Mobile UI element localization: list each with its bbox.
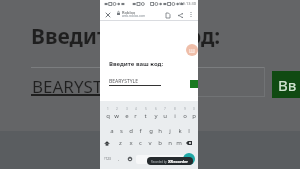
staticText: Roblox: [122, 10, 136, 15]
button[interactable]: ?123: [101, 154, 114, 164]
button[interactable]: n: [165, 138, 174, 148]
button[interactable]: y: [151, 111, 160, 121]
staticText: 4: [135, 107, 137, 111]
staticText: q: [106, 112, 110, 120]
staticText: 3: [126, 107, 128, 111]
button[interactable]: Вв: [272, 71, 300, 98]
button[interactable]: v: [145, 138, 154, 148]
staticText: 7: [164, 107, 166, 111]
button[interactable]: Space: [136, 155, 186, 164]
staticText: 9: [184, 107, 186, 111]
staticText: 6: [155, 107, 157, 111]
staticText: m: [176, 139, 182, 147]
staticText: u: [163, 112, 167, 120]
button[interactable]: p: [189, 111, 198, 121]
staticText: BEARYSTYLE: [109, 78, 138, 85]
button[interactable]: Emoji: [126, 154, 134, 164]
staticText: XRecorder: [168, 159, 189, 164]
button[interactable]: w: [112, 111, 121, 121]
staticText: b: [158, 139, 162, 147]
button[interactable]: Enter: [183, 153, 195, 165]
staticText: d: [129, 127, 133, 135]
staticText: x: [129, 139, 133, 147]
staticText: z: [119, 139, 122, 147]
staticText: Вв: [278, 75, 297, 95]
button[interactable]: Share: [175, 10, 185, 20]
button[interactable]: e: [122, 111, 131, 121]
button[interactable]: i: [170, 111, 179, 121]
button[interactable]: t: [141, 111, 150, 121]
staticText: ?123: [104, 157, 111, 161]
button[interactable]: Save page: [163, 10, 173, 20]
staticText: i: [174, 112, 176, 120]
staticText: 13:30: [186, 1, 196, 6]
staticText: k: [178, 127, 182, 135]
staticText: r: [134, 112, 137, 120]
staticText: Введите ваш код:: [31, 22, 221, 51]
staticText: 0: [193, 107, 195, 111]
staticText: n: [168, 139, 172, 147]
button[interactable]: o: [180, 111, 189, 121]
button[interactable]: z: [116, 138, 125, 148]
staticText: t: [144, 112, 147, 120]
staticText: 61%: [179, 2, 186, 6]
staticText: ш: [189, 46, 195, 55]
staticText: j: [169, 127, 171, 135]
button[interactable]: Backspace: [183, 138, 194, 148]
button[interactable]: c: [136, 138, 145, 148]
staticText: s: [120, 127, 123, 135]
button[interactable]: q: [103, 111, 112, 121]
button[interactable]: ,: [115, 154, 123, 164]
staticText: w: [114, 112, 119, 120]
staticText: e: [125, 112, 129, 120]
staticText: 1: [107, 107, 109, 111]
button[interactable]: d: [126, 126, 135, 136]
staticText: y: [154, 112, 158, 120]
button[interactable]: r: [131, 111, 140, 121]
staticText: v: [148, 139, 152, 147]
staticText: web.roblox.com: [122, 14, 146, 18]
staticText: 5: [145, 107, 147, 111]
button[interactable]: b: [155, 138, 164, 148]
staticText: c: [139, 139, 142, 147]
staticText: g: [149, 127, 153, 135]
button[interactable]: a: [107, 126, 116, 136]
staticText: o: [183, 112, 187, 120]
staticText: h: [158, 127, 162, 135]
staticText: 8: [174, 107, 176, 111]
button[interactable]: g: [146, 126, 155, 136]
staticText: Введите ваш код:: [109, 60, 164, 68]
button[interactable]: Close: [103, 10, 113, 20]
staticText: 2: [116, 107, 118, 111]
button[interactable]: m: [174, 138, 183, 148]
button[interactable]: s: [117, 126, 126, 136]
button[interactable]: Shift: [101, 138, 112, 148]
button[interactable]: f: [136, 126, 145, 136]
button[interactable]: h: [155, 126, 164, 136]
button[interactable]: x: [126, 138, 135, 148]
button[interactable]: l: [184, 126, 193, 136]
staticText: a: [110, 127, 114, 135]
staticText: f: [139, 127, 142, 135]
staticText: p: [192, 112, 196, 120]
button[interactable]: u: [160, 111, 169, 121]
button[interactable]: k: [175, 126, 184, 136]
staticText: l: [188, 127, 190, 135]
staticText: BEARYSTYLE: [32, 75, 131, 98]
button[interactable]: j: [165, 126, 174, 136]
staticText: ,: [118, 156, 120, 162]
staticText: Recorded by: [151, 160, 168, 164]
button[interactable]: More options: [186, 10, 195, 19]
